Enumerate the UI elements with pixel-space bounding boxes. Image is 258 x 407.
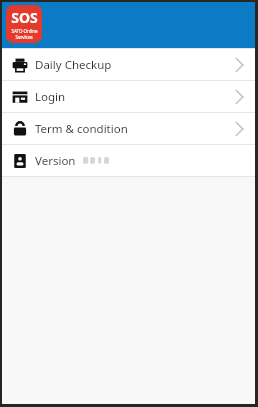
staticText: Login bbox=[35, 89, 66, 105]
staticText: SOS bbox=[11, 8, 38, 27]
other: Open bbox=[234, 57, 245, 73]
staticText: Term & condition bbox=[35, 121, 128, 137]
other: Open bbox=[234, 89, 245, 105]
other: SATO Online Services logo bbox=[6, 5, 42, 43]
button[interactable]: Login bbox=[2, 81, 255, 112]
staticText: Services bbox=[15, 34, 33, 40]
staticText: SATO Online bbox=[11, 28, 38, 34]
button[interactable]: Version bbox=[2, 145, 255, 176]
other: Open bbox=[234, 121, 245, 137]
button[interactable]: Term & condition bbox=[2, 113, 255, 144]
staticText: Version bbox=[35, 153, 76, 169]
button[interactable]: Daily Checkup bbox=[2, 49, 255, 80]
staticText: Daily Checkup bbox=[35, 57, 112, 73]
